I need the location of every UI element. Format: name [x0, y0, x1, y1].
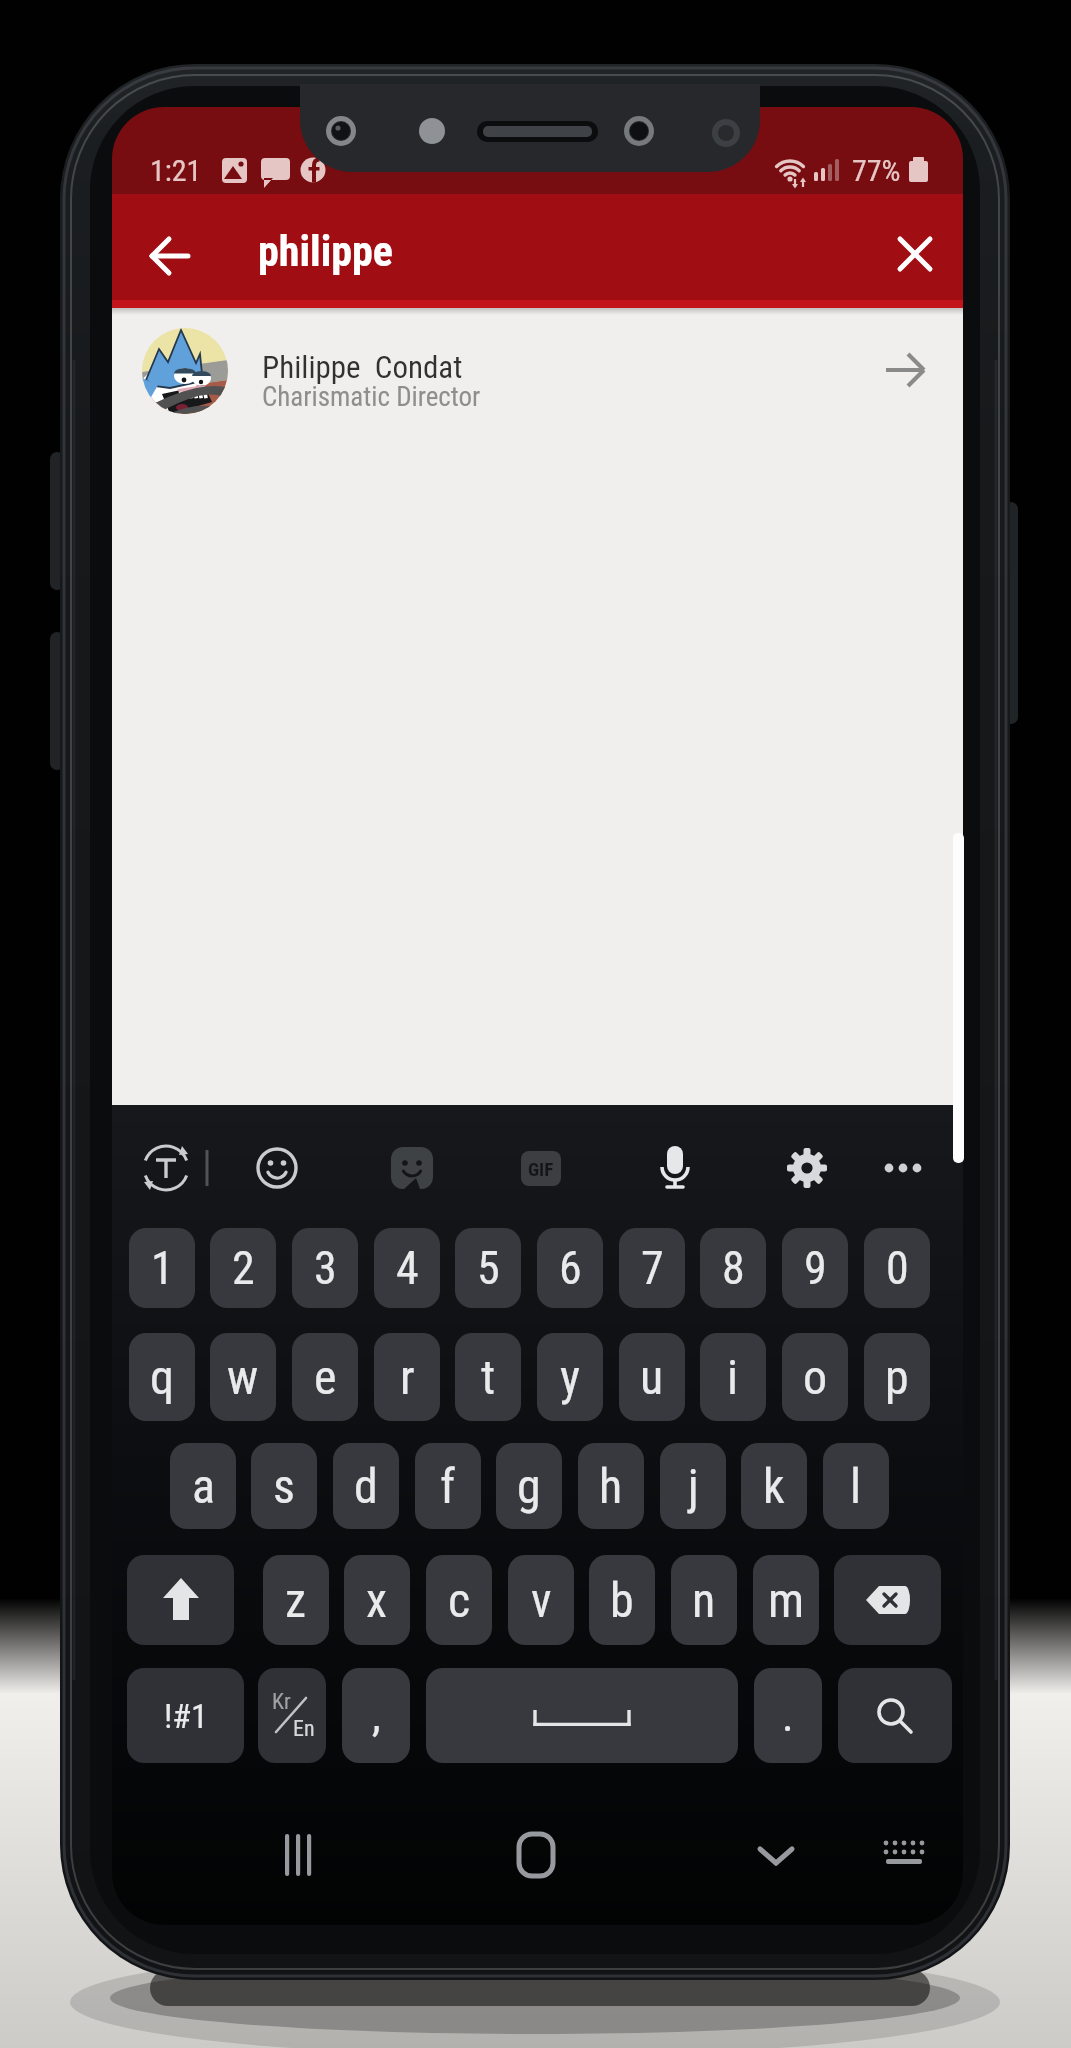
button[interactable]: [645, 1138, 705, 1198]
button[interactable]: Philippe Condat: [112, 308, 963, 438]
staticText: 0: [886, 1241, 909, 1295]
staticText: i: [727, 1349, 739, 1405]
button[interactable]: 8: [700, 1228, 766, 1308]
button[interactable]: q: [129, 1333, 195, 1421]
staticText: k: [763, 1458, 785, 1514]
staticText: philippe: [258, 227, 393, 276]
button[interactable]: d: [333, 1443, 399, 1529]
button[interactable]: b: [589, 1555, 655, 1645]
button[interactable]: 6: [537, 1228, 603, 1308]
staticText: s: [273, 1458, 295, 1514]
button[interactable]: l: [823, 1443, 889, 1529]
staticText: g: [517, 1458, 541, 1514]
staticText: x: [366, 1572, 388, 1628]
button[interactable]: 0: [864, 1228, 930, 1308]
staticText: e: [314, 1349, 337, 1405]
button[interactable]: .: [754, 1668, 822, 1763]
staticText: 3: [314, 1241, 337, 1295]
staticText: Philippe Condat: [262, 349, 463, 385]
staticText: q: [150, 1349, 175, 1405]
staticText: v: [531, 1572, 552, 1628]
staticText: 6: [559, 1241, 582, 1295]
button[interactable]: s: [251, 1443, 317, 1529]
button[interactable]: [875, 214, 955, 294]
staticText: 7: [641, 1241, 664, 1295]
button[interactable]: [834, 1555, 941, 1645]
button[interactable]: 7: [619, 1228, 685, 1308]
button[interactable]: 4: [374, 1228, 440, 1308]
staticText: f: [440, 1458, 456, 1514]
button[interactable]: 1: [129, 1228, 195, 1308]
button[interactable]: GIF: [521, 1151, 561, 1186]
button[interactable]: [247, 1138, 307, 1198]
staticText: 2: [232, 1241, 255, 1295]
staticText: 8: [722, 1241, 745, 1295]
button[interactable]: [504, 1823, 568, 1887]
staticText: b: [610, 1572, 634, 1628]
staticText: .: [782, 1690, 794, 1742]
staticText: En: [293, 1716, 315, 1742]
button[interactable]: u: [619, 1333, 685, 1421]
button[interactable]: z: [263, 1555, 329, 1645]
button[interactable]: j: [660, 1443, 726, 1529]
button[interactable]: 3: [292, 1228, 358, 1308]
staticText: c: [448, 1572, 471, 1628]
button[interactable]: [838, 1668, 952, 1763]
button[interactable]: Kr: [258, 1668, 326, 1763]
button[interactable]: g: [496, 1443, 562, 1529]
button[interactable]: a: [170, 1443, 236, 1529]
button[interactable]: h: [578, 1443, 644, 1529]
staticText: Charismatic Director: [262, 381, 481, 413]
button[interactable]: [777, 1138, 837, 1198]
staticText: p: [885, 1349, 909, 1405]
staticText: w: [227, 1349, 259, 1405]
button[interactable]: 2: [210, 1228, 276, 1308]
staticText: r: [400, 1349, 415, 1405]
button[interactable]: t: [455, 1333, 521, 1421]
button[interactable]: [267, 1823, 331, 1887]
button[interactable]: 9: [782, 1228, 848, 1308]
staticText: y: [560, 1349, 580, 1405]
button[interactable]: k: [741, 1443, 807, 1529]
staticText: Kr: [272, 1689, 291, 1715]
staticText: u: [640, 1349, 664, 1405]
button[interactable]: y: [537, 1333, 603, 1421]
button[interactable]: [136, 1138, 196, 1198]
staticText: 5: [477, 1241, 500, 1295]
staticText: h: [599, 1458, 623, 1514]
button[interactable]: [872, 1823, 936, 1887]
button[interactable]: p: [864, 1333, 930, 1421]
staticText: o: [803, 1349, 828, 1405]
button[interactable]: c: [426, 1555, 492, 1645]
staticText: d: [354, 1458, 378, 1514]
staticText: 1: [151, 1241, 174, 1295]
button[interactable]: x: [344, 1555, 410, 1645]
button[interactable]: w: [210, 1333, 276, 1421]
button[interactable]: [744, 1823, 808, 1887]
button[interactable]: ,: [342, 1668, 410, 1763]
staticText: GIF: [528, 1158, 554, 1180]
staticText: j: [688, 1458, 699, 1514]
button[interactable]: m: [753, 1555, 819, 1645]
staticText: n: [692, 1572, 716, 1628]
button[interactable]: e: [292, 1333, 358, 1421]
button[interactable]: [130, 216, 210, 296]
staticText: 77%: [852, 153, 901, 188]
button[interactable]: f: [415, 1443, 481, 1529]
button[interactable]: [426, 1668, 738, 1763]
button[interactable]: [382, 1138, 442, 1198]
button[interactable]: r: [374, 1333, 440, 1421]
button[interactable]: n: [671, 1555, 737, 1645]
button[interactable]: i: [700, 1333, 766, 1421]
button[interactable]: 5: [455, 1228, 521, 1308]
button[interactable]: o: [782, 1333, 848, 1421]
staticText: !#1: [164, 1696, 208, 1736]
staticText: m: [768, 1572, 805, 1628]
button[interactable]: [873, 1138, 933, 1198]
button[interactable]: !#1: [127, 1668, 244, 1763]
staticText: l: [850, 1458, 862, 1514]
staticText: z: [285, 1572, 307, 1628]
button[interactable]: v: [508, 1555, 574, 1645]
staticText: 1:21: [150, 153, 202, 188]
button[interactable]: [127, 1555, 234, 1645]
